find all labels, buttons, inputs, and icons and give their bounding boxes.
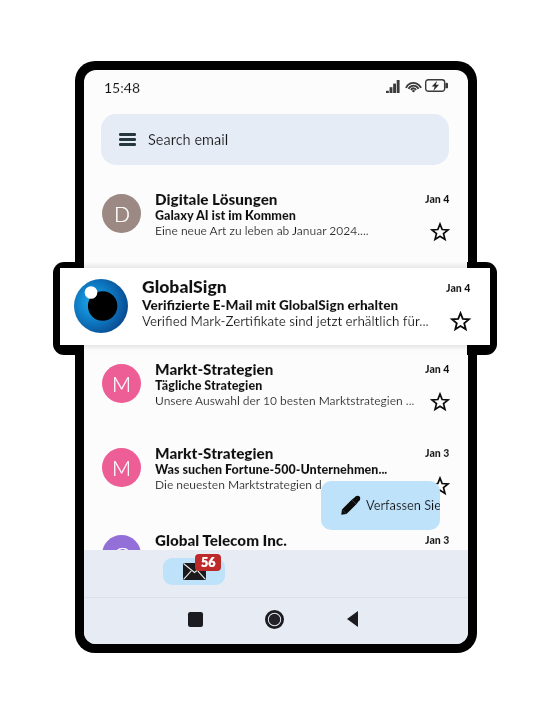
staticText: Global Telecom Inc. <box>155 531 287 549</box>
staticText: Eine neue Art zu leben ab Januar 2024...… <box>155 223 369 237</box>
other: Star <box>431 393 449 411</box>
button[interactable]: Recents <box>176 598 214 644</box>
staticText: M <box>112 371 132 396</box>
other: Star <box>431 477 449 495</box>
staticText: 15:48 <box>104 79 141 96</box>
staticText: Verfassen Sie <box>366 497 440 512</box>
button[interactable]: D <box>84 179 468 263</box>
staticText: Jan 3 <box>425 447 450 460</box>
button[interactable]: Back <box>333 598 371 644</box>
staticText: GlobalSign <box>142 276 227 297</box>
button[interactable]: M <box>84 433 468 517</box>
button[interactable]: Search email <box>101 114 449 165</box>
staticText: Die neuesten Marktstrategien d <box>155 477 322 491</box>
staticText: Jan 4 <box>425 193 450 206</box>
staticText: Verifizierte E-Mail mit GlobalSign erhal… <box>142 297 399 313</box>
staticText: Search email <box>148 131 229 148</box>
staticText: Unsere Auswahl der 10 besten Marktstrate… <box>155 393 415 407</box>
staticText: 56 <box>201 555 216 570</box>
staticText: G <box>114 542 130 567</box>
staticText: Markt-Strategien <box>155 444 274 462</box>
staticText: Was suchen Fortune-500-Unternehmen... <box>155 462 388 477</box>
staticText: Jan 4 <box>446 282 471 295</box>
button[interactable]: Compose <box>321 481 440 530</box>
button[interactable]: GlobalSign logo <box>53 262 497 355</box>
staticText: M <box>112 455 132 480</box>
button[interactable]: M <box>84 349 468 433</box>
staticText: Jan 4 <box>425 363 450 376</box>
button[interactable]: Mail <box>163 558 225 585</box>
other: Star <box>431 223 449 241</box>
button[interactable]: G <box>84 520 468 604</box>
staticText: Jan 3 <box>425 534 450 547</box>
button[interactable]: Home <box>255 598 293 644</box>
staticText: Galaxy AI ist im Kommen <box>155 208 296 223</box>
staticText: Markt-Strategien <box>155 360 274 378</box>
staticText: D <box>114 201 130 226</box>
other: Compose <box>340 495 361 516</box>
other: GlobalSign logo <box>74 279 128 333</box>
staticText: Digitale Lösungen <box>155 190 278 208</box>
staticText: Verified Mark-Zertifikate sind jetzt erh… <box>142 313 429 329</box>
staticText: Tägliche Strategien <box>155 378 263 393</box>
other: Star <box>451 312 470 331</box>
